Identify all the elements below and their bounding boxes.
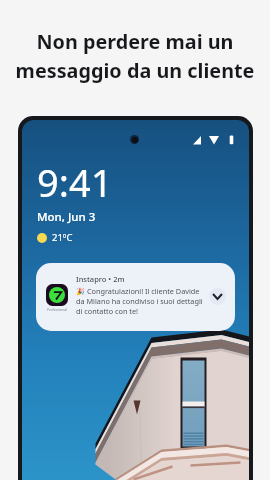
- staticText: 21ºC: [52, 231, 73, 244]
- staticText: Professional: [47, 307, 68, 312]
- staticText: Non perdere mai un messaggio da un clien…: [6, 28, 264, 84]
- staticText: Mon, Jun 3: [37, 209, 96, 225]
- staticText: 🎉 Congratulazioni! Il cliente Davide da …: [76, 286, 206, 316]
- button[interactable]: Professional: [36, 263, 235, 331]
- staticText: 9:41: [37, 156, 113, 208]
- button[interactable]: Expand notification: [209, 288, 226, 305]
- staticText: Instapro • 2m: [76, 274, 125, 284]
